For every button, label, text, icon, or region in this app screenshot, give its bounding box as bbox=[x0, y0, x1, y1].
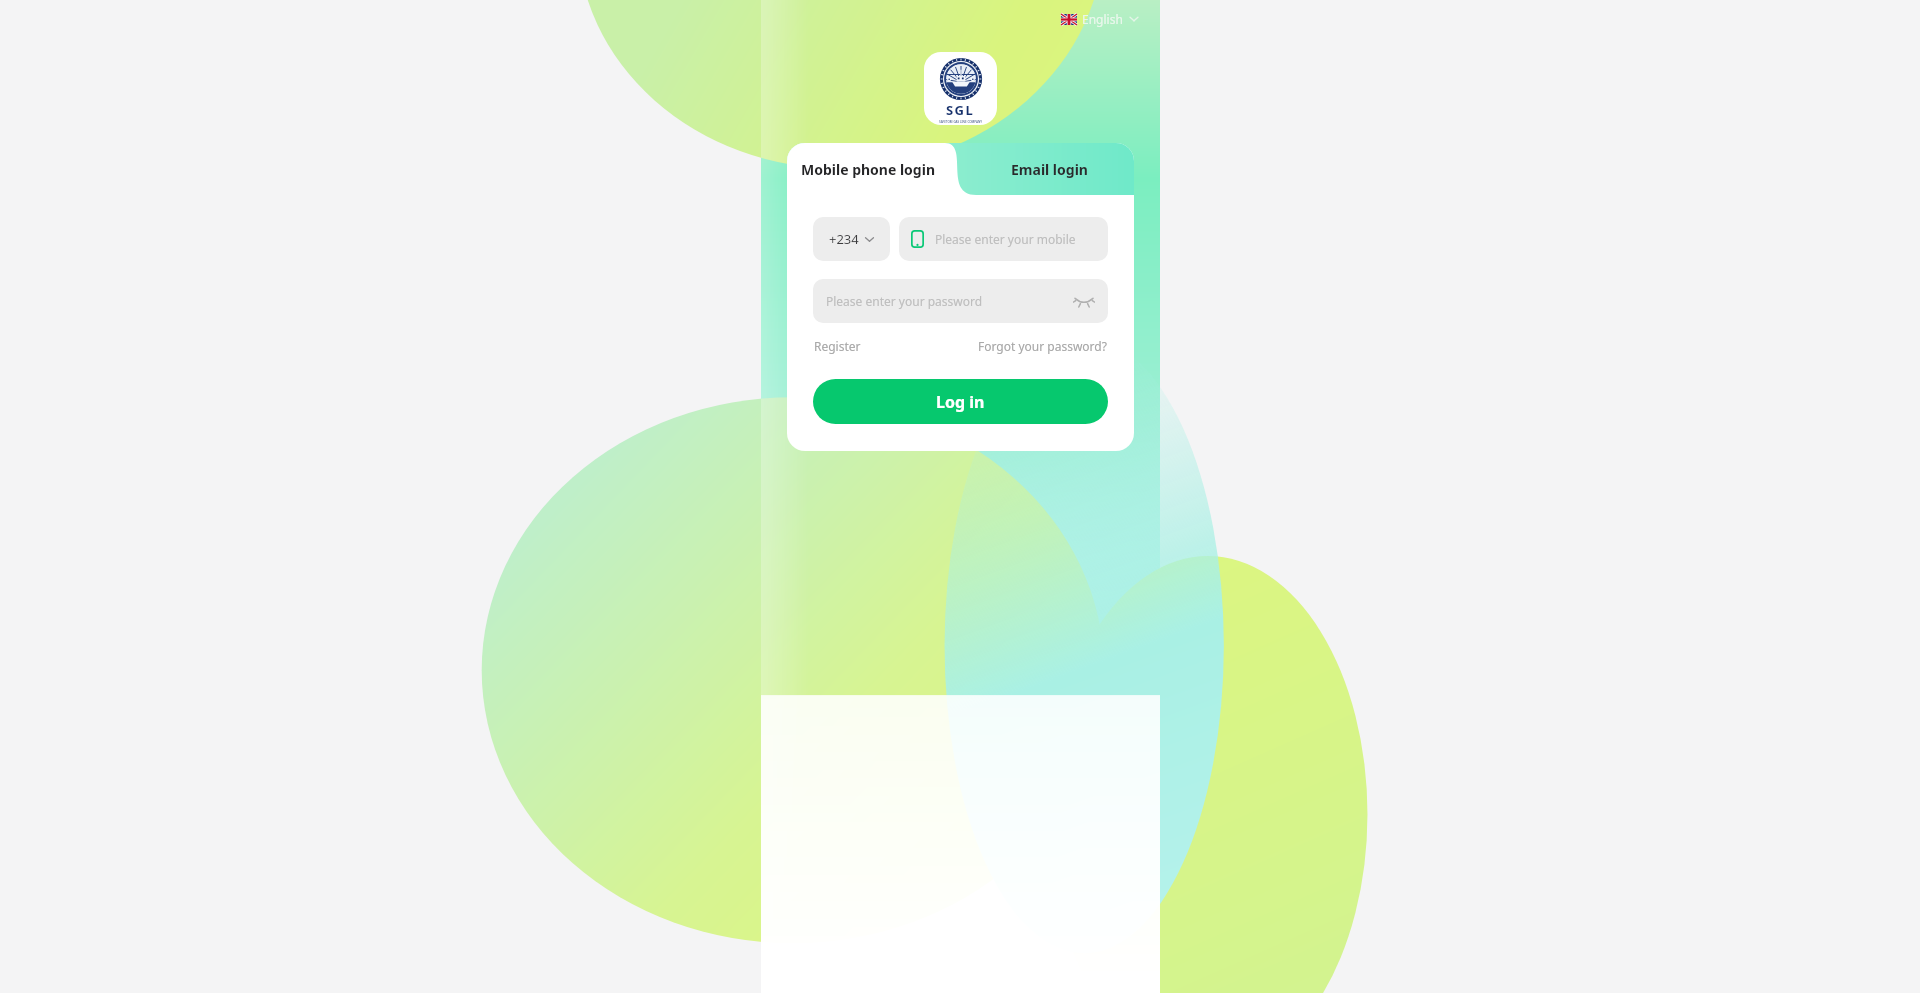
button[interactable]: Log in bbox=[813, 379, 1108, 424]
staticText: Mobile phone login bbox=[801, 160, 936, 179]
staticText: Register bbox=[814, 338, 861, 354]
button[interactable]: Show password bbox=[1073, 290, 1095, 312]
staticText: SAFETOM GAS LINE COMPANY bbox=[939, 120, 983, 124]
staticText: Please enter your mobile bbox=[935, 231, 1076, 247]
button[interactable]: Register bbox=[813, 335, 862, 357]
button[interactable]: Please enter your password bbox=[813, 279, 1108, 323]
button[interactable]: English bbox=[1057, 8, 1144, 30]
staticText: Forgot your password? bbox=[978, 338, 1107, 354]
button[interactable]: Forgot your password? bbox=[977, 335, 1108, 357]
staticText: Log in bbox=[936, 391, 985, 413]
staticText: Email login bbox=[1011, 160, 1088, 179]
button[interactable]: +234 bbox=[813, 217, 890, 261]
button[interactable]: Please enter your mobile bbox=[899, 217, 1108, 261]
staticText: +234 bbox=[829, 230, 859, 248]
staticText: Please enter your password bbox=[826, 293, 1073, 309]
staticText: English bbox=[1082, 11, 1123, 27]
staticText: SGL bbox=[946, 101, 975, 119]
button[interactable]: Email login bbox=[960, 143, 1134, 195]
button[interactable]: Mobile phone login bbox=[787, 143, 960, 195]
